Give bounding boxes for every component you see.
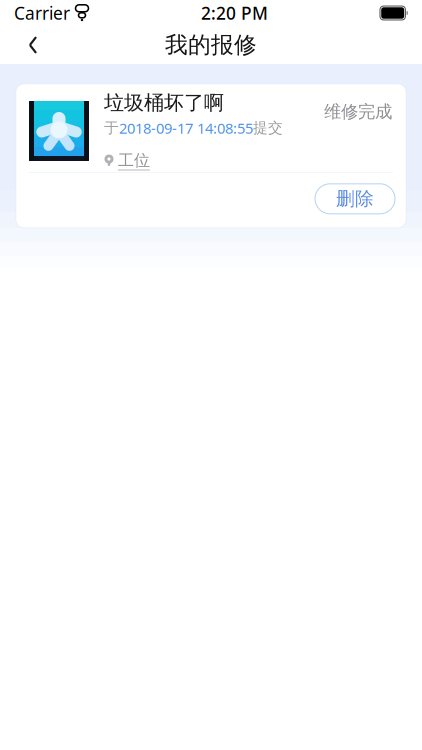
staticText: 2018-09-17 14:08:55 <box>119 118 253 138</box>
staticText: 删除 <box>336 187 374 210</box>
staticText: 2:20 PM <box>201 1 268 24</box>
staticText: 维修完成 <box>324 101 392 122</box>
staticText: Carrier <box>14 1 70 24</box>
staticText: 于 <box>104 119 119 137</box>
staticText: 提交 <box>253 119 283 137</box>
button[interactable]: 删除 <box>315 184 395 214</box>
staticText: 工位 <box>118 151 150 170</box>
staticText: 我的报修 <box>165 31 257 59</box>
staticText: 垃圾桶坏了啊 <box>104 91 224 115</box>
button[interactable]: 返回 <box>11 26 55 64</box>
